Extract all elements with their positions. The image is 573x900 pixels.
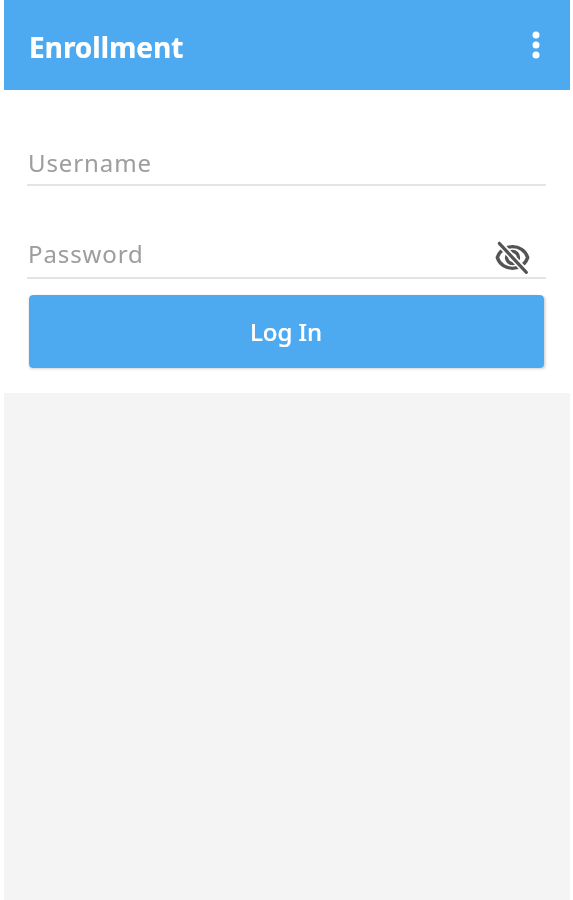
button[interactable]: Password [27,221,546,279]
button[interactable]: Username [27,130,546,186]
staticText: Password [28,237,144,270]
button[interactable]: Log In [29,295,544,368]
button[interactable]: Show password [489,234,535,280]
staticText: Log In [250,315,323,348]
staticText: Username [28,146,152,179]
button[interactable]: More options [512,21,560,69]
staticText: Enrollment [29,28,184,66]
